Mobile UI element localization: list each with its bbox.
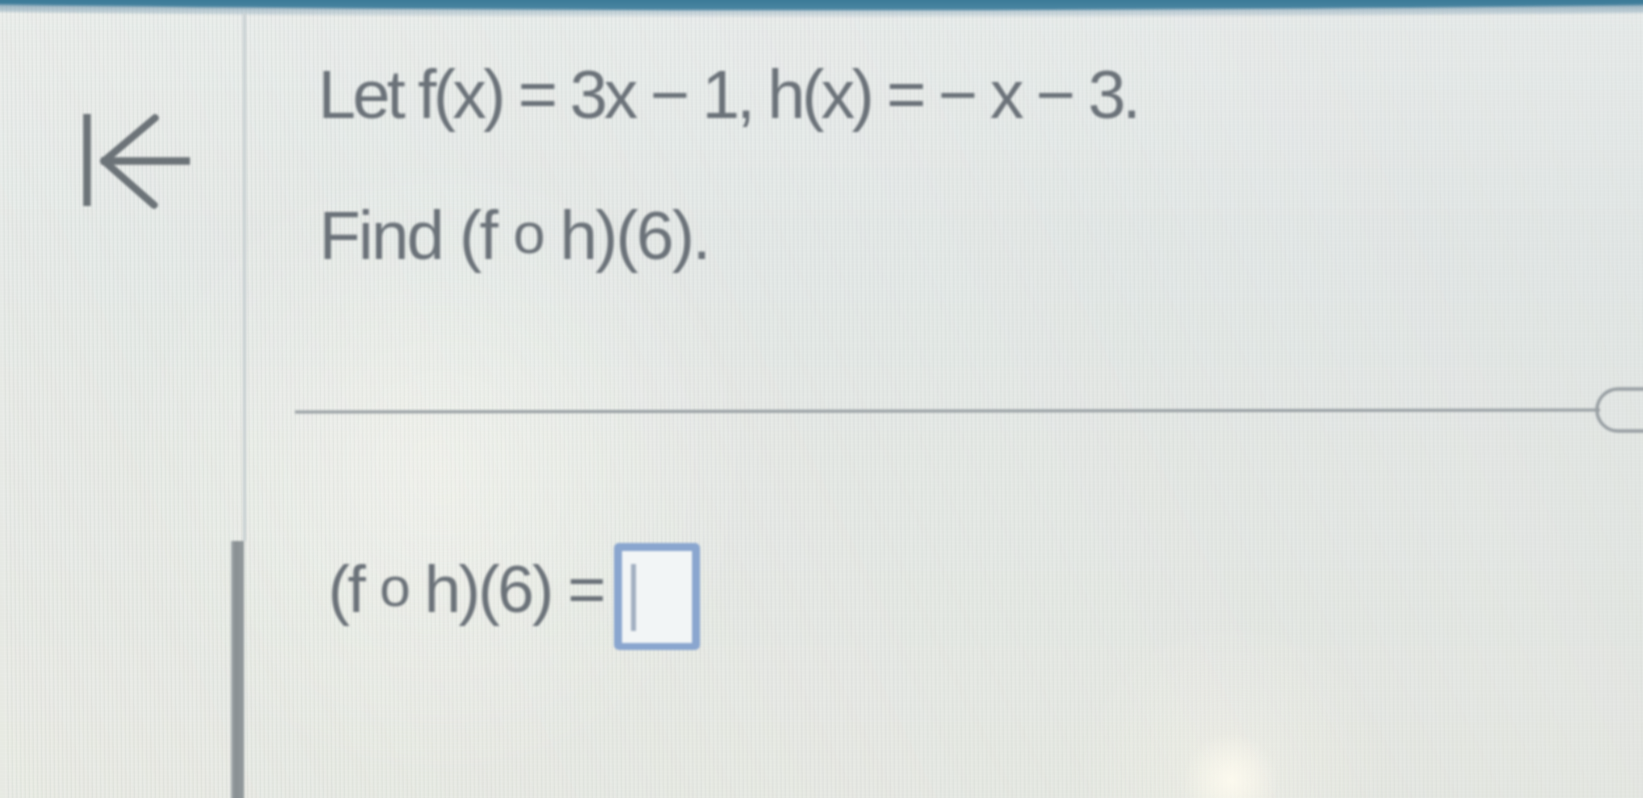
staticText: Let f(x) = 3x − 1, h(x) = − x − 3.: [318, 56, 1138, 132]
staticText: (f o h)(6) =: [328, 552, 604, 626]
staticText: Find (f o h)(6).: [319, 197, 710, 273]
button[interactable]: Back: [60, 96, 218, 224]
button[interactable]: [614, 543, 700, 650]
